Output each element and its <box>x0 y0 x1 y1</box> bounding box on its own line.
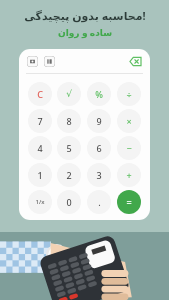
staticText: + <box>126 169 132 181</box>
button[interactable]: C <box>28 82 52 106</box>
staticText: 1/x <box>35 198 45 206</box>
button[interactable]: 1/x <box>28 190 52 214</box>
staticText: 3 <box>96 169 102 181</box>
button[interactable]: Convert <box>44 56 55 67</box>
button[interactable]: Backspace <box>129 55 142 68</box>
staticText: 5 <box>66 142 72 154</box>
button[interactable]: 6 <box>87 136 111 160</box>
button[interactable]: 2 <box>57 163 81 187</box>
staticText: . <box>98 196 101 208</box>
button[interactable]: − <box>117 136 141 160</box>
button[interactable]: 0 <box>57 190 81 214</box>
button[interactable]: 3 <box>87 163 111 187</box>
staticText: 0 <box>66 196 72 208</box>
staticText: ÷ <box>126 88 132 100</box>
button[interactable]: . <box>87 190 111 214</box>
button[interactable]: = <box>117 190 141 214</box>
button[interactable]: % <box>87 82 111 106</box>
button[interactable]: + <box>117 163 141 187</box>
button[interactable]: ÷ <box>117 82 141 106</box>
staticText: 8 <box>66 115 72 127</box>
button[interactable]: History <box>27 56 38 67</box>
staticText: 4 <box>37 142 43 154</box>
staticText: × <box>126 115 132 127</box>
staticText: ساده و روان <box>58 26 112 38</box>
button[interactable]: 1 <box>28 163 52 187</box>
staticText: 6 <box>96 142 102 154</box>
button[interactable]: 7 <box>28 109 52 133</box>
staticText: محاسبه بدون پیچیدگی! <box>24 8 146 23</box>
staticText: 7 <box>37 115 43 127</box>
staticText: 1 <box>37 169 43 181</box>
staticText: 2 <box>66 169 72 181</box>
button[interactable]: 5 <box>57 136 81 160</box>
button[interactable]: 9 <box>87 109 111 133</box>
staticText: √ <box>66 89 72 99</box>
button[interactable]: × <box>117 109 141 133</box>
button[interactable]: 8 <box>57 109 81 133</box>
staticText: = <box>126 196 132 208</box>
staticText: % <box>95 88 103 100</box>
staticText: − <box>126 142 132 154</box>
button[interactable]: 4 <box>28 136 52 160</box>
staticText: 9 <box>96 115 102 127</box>
staticText: C <box>37 88 43 100</box>
button[interactable]: √ <box>57 82 81 106</box>
